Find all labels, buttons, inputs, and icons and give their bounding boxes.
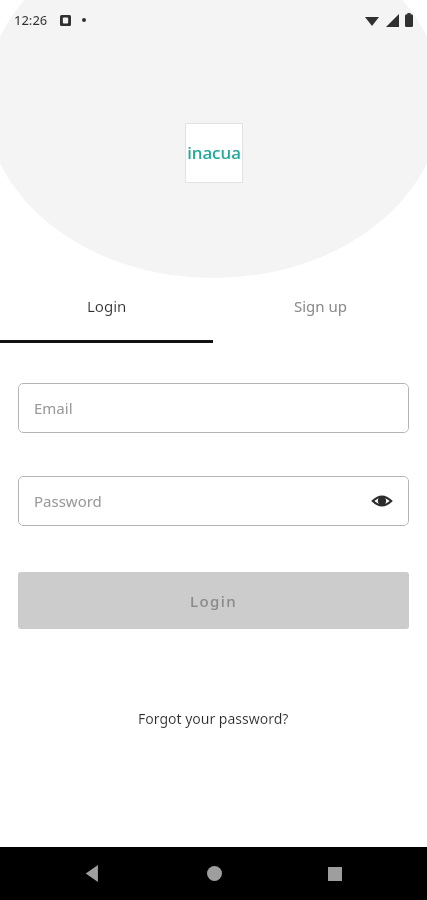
staticText: Email — [34, 398, 73, 418]
staticText: Login — [190, 591, 237, 611]
button[interactable]: Recent apps — [306, 847, 364, 900]
button[interactable]: Login — [18, 572, 409, 629]
button[interactable]: Sign up — [213, 296, 427, 340]
button[interactable]: Password — [18, 476, 409, 526]
button[interactable]: Login — [0, 296, 213, 340]
staticText: 12:26 — [14, 11, 48, 29]
button[interactable]: Home — [185, 847, 243, 900]
button[interactable]: Forgot your password? — [126, 703, 301, 734]
button[interactable]: Email — [18, 383, 409, 433]
button[interactable]: Show password — [365, 484, 399, 518]
staticText: inacua — [187, 141, 241, 164]
staticText: Login — [87, 296, 127, 316]
button[interactable]: Back — [63, 847, 121, 900]
staticText: Sign up — [294, 296, 347, 316]
staticText: Password — [34, 491, 102, 511]
staticText: Forgot your password? — [138, 709, 289, 728]
